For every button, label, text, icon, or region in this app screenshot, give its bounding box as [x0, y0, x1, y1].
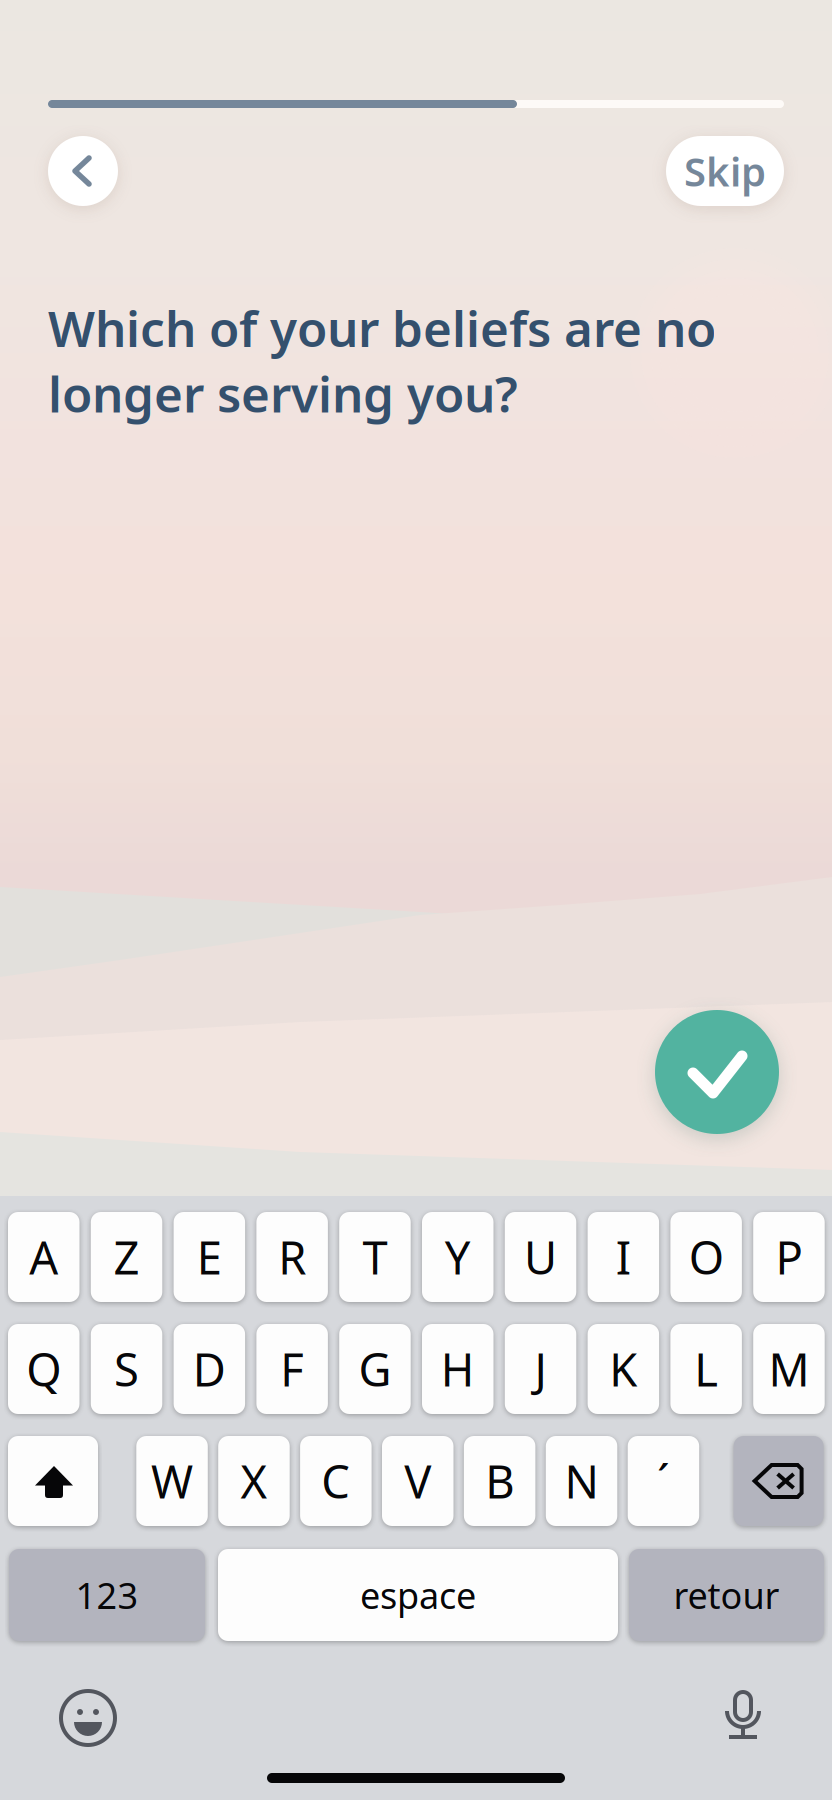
staticText: G	[358, 1339, 391, 1399]
staticText: Y	[445, 1227, 471, 1287]
staticText: L	[694, 1339, 718, 1399]
button[interactable]: L	[670, 1324, 742, 1414]
staticText: 123	[75, 1571, 138, 1619]
button[interactable]: X	[218, 1436, 290, 1526]
staticText: O	[689, 1227, 724, 1287]
button[interactable]: Skip	[666, 136, 784, 206]
staticText: Skip	[684, 144, 766, 197]
staticText: N	[564, 1451, 598, 1511]
staticText: D	[193, 1339, 226, 1399]
staticText: X	[240, 1451, 267, 1511]
button[interactable]: V	[382, 1436, 453, 1526]
button[interactable]: Back	[48, 136, 118, 206]
button[interactable]: E	[174, 1212, 245, 1302]
staticText: Z	[113, 1227, 139, 1287]
staticText: B	[485, 1451, 514, 1511]
staticText: Q	[26, 1339, 61, 1399]
button[interactable]: D	[174, 1324, 245, 1414]
button[interactable]: P	[753, 1212, 825, 1302]
button[interactable]: O	[670, 1212, 742, 1302]
button[interactable]: Y	[422, 1212, 493, 1302]
button[interactable]: 123	[9, 1549, 205, 1641]
button[interactable]: R	[256, 1212, 328, 1302]
button[interactable]: B	[464, 1436, 535, 1526]
button[interactable]: Z	[91, 1212, 162, 1302]
button[interactable]: Q	[8, 1324, 79, 1414]
staticText: R	[278, 1227, 306, 1287]
button[interactable]: Delete	[734, 1436, 824, 1526]
staticText: espace	[360, 1571, 476, 1619]
button[interactable]: W	[136, 1436, 208, 1526]
staticText: P	[775, 1227, 802, 1287]
button[interactable]: ´	[628, 1436, 699, 1526]
button[interactable]: T	[339, 1212, 411, 1302]
button[interactable]: A	[8, 1212, 79, 1302]
staticText: F	[280, 1339, 304, 1399]
staticText: Which of your beliefs are no longer serv…	[48, 295, 716, 426]
button[interactable]: J	[505, 1324, 576, 1414]
staticText: V	[404, 1451, 431, 1511]
button[interactable]: M	[753, 1324, 825, 1414]
staticText: A	[29, 1227, 58, 1287]
staticText: ´	[657, 1451, 670, 1511]
staticText: E	[197, 1227, 222, 1287]
staticText: U	[524, 1227, 557, 1287]
staticText: W	[151, 1451, 193, 1511]
button[interactable]: retour	[629, 1549, 824, 1641]
button[interactable]: H	[422, 1324, 493, 1414]
staticText: S	[114, 1339, 139, 1399]
button[interactable]: S	[91, 1324, 162, 1414]
button[interactable]: K	[588, 1324, 659, 1414]
staticText: M	[768, 1339, 809, 1399]
staticText: H	[441, 1339, 475, 1399]
button[interactable]: espace	[218, 1549, 618, 1641]
button[interactable]: N	[546, 1436, 617, 1526]
button[interactable]: Shift	[8, 1436, 98, 1526]
staticText: T	[362, 1227, 387, 1287]
button[interactable]: F	[256, 1324, 328, 1414]
staticText: J	[534, 1339, 546, 1399]
staticText: retour	[673, 1571, 779, 1619]
button[interactable]: Emoji	[60, 1690, 116, 1746]
button[interactable]: G	[339, 1324, 411, 1414]
button[interactable]: Submit	[655, 1010, 779, 1134]
button[interactable]: U	[505, 1212, 576, 1302]
button[interactable]: C	[300, 1436, 372, 1526]
button[interactable]: Dictate	[716, 1688, 772, 1744]
staticText: K	[609, 1339, 637, 1399]
staticText: C	[321, 1451, 350, 1511]
staticText: I	[616, 1227, 631, 1287]
button[interactable]: I	[588, 1212, 659, 1302]
